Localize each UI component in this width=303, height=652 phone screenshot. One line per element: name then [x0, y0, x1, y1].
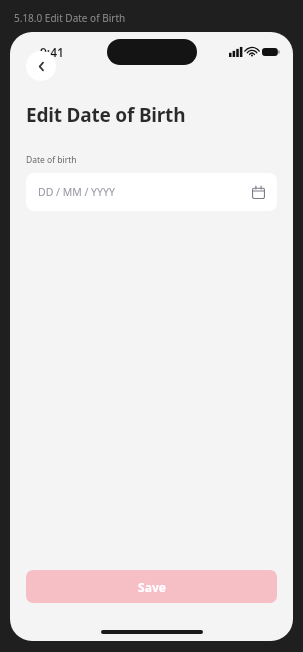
staticText: Edit Date of Birth [26, 102, 186, 128]
staticText: 9:41 [40, 44, 64, 60]
staticText: Save [138, 579, 166, 595]
button[interactable]: Open calendar [251, 185, 265, 199]
staticText: 5.18.0 Edit Date of Birth [14, 11, 126, 25]
staticText: Date of birth [26, 154, 77, 166]
button[interactable]: Back [26, 51, 56, 81]
button[interactable]: DD / MM / YYYY [26, 173, 277, 211]
button[interactable]: Save [26, 570, 277, 603]
staticText: DD / MM / YYYY [38, 185, 115, 199]
